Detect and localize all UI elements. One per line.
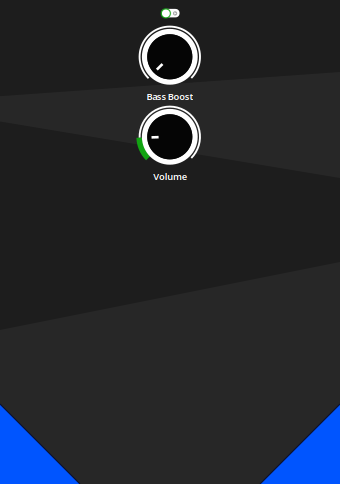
staticText: Volume <box>153 170 187 182</box>
button[interactable]: Play <box>0 0 340 484</box>
staticText: Bass Boost <box>147 90 193 102</box>
